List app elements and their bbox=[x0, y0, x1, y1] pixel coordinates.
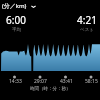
staticText: 58:15 bbox=[85, 78, 98, 85]
staticText: 4:21 bbox=[77, 13, 97, 27]
staticText: 平均 bbox=[12, 27, 21, 33]
staticText: (分／km) bbox=[2, 2, 27, 10]
button[interactable]: (分／km) bbox=[2, 2, 37, 10]
staticText: ベスト bbox=[80, 27, 94, 33]
other: Change metric bbox=[30, 3, 37, 10]
button[interactable]: 6:00 bbox=[0, 13, 36, 33]
button[interactable]: 4:21 bbox=[67, 13, 100, 33]
staticText: 29:07 bbox=[34, 78, 47, 85]
staticText: 14:33 bbox=[9, 78, 22, 85]
staticText: 時間（時：分：秒） bbox=[30, 86, 71, 92]
staticText: 43:41 bbox=[60, 78, 73, 85]
staticText: 6:00 bbox=[6, 13, 26, 27]
